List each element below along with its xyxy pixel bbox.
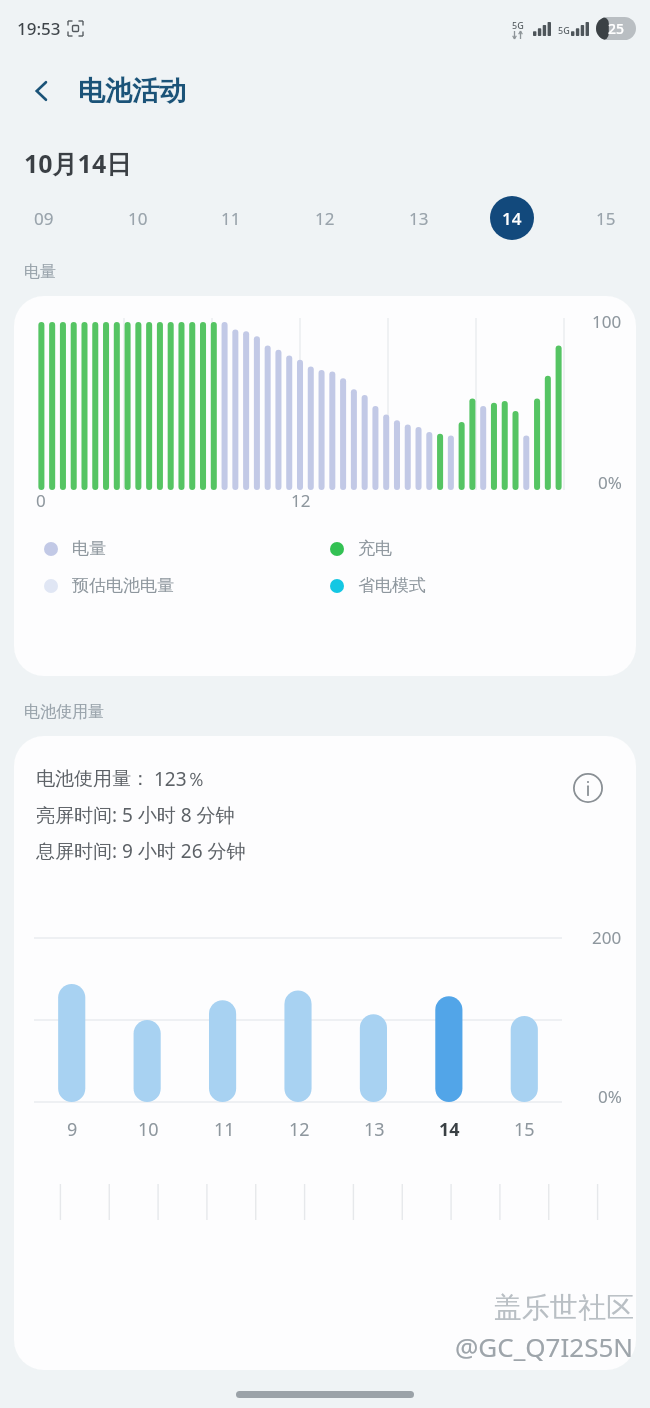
staticText: @GC_Q7I2S5N <box>455 1329 634 1364</box>
button[interactable]: Info <box>566 766 610 810</box>
staticText: 19:53 <box>17 17 61 40</box>
staticText: 10 <box>128 207 148 230</box>
button[interactable]: 充电 <box>330 538 616 559</box>
staticText: 10月14日 <box>24 146 132 180</box>
button[interactable]: 10 <box>116 196 160 240</box>
staticText: 12 <box>291 489 311 512</box>
staticText: 5G <box>512 19 524 31</box>
staticText: 0% <box>598 1085 622 1108</box>
staticText: 15 <box>514 1117 535 1142</box>
staticText: 14 <box>502 207 522 230</box>
staticText: 25 <box>608 19 625 38</box>
button[interactable]: 省电模式 <box>330 575 616 596</box>
staticText: 12 <box>315 207 335 230</box>
staticText: 省电模式 <box>358 575 426 596</box>
staticText: 123％ <box>154 766 206 792</box>
staticText: 电量 <box>72 538 106 559</box>
staticText: 09 <box>34 207 54 230</box>
staticText: 电池使用量 <box>24 702 104 722</box>
staticText: 预估电池电量 <box>72 575 174 596</box>
staticText: 盖乐世社区 <box>494 1290 634 1325</box>
staticText: 充电 <box>358 538 392 559</box>
button[interactable]: 09 <box>22 196 66 240</box>
staticText: 9 <box>67 1117 78 1142</box>
staticText: 14 <box>439 1117 460 1142</box>
staticText: 电量 <box>24 262 56 282</box>
button[interactable]: 电量 <box>44 538 330 559</box>
staticText: 15 <box>596 207 616 230</box>
staticText: 0% <box>598 471 622 494</box>
button[interactable]: 11 <box>209 196 253 240</box>
staticText: 电池活动 <box>78 74 186 108</box>
staticText: 11 <box>214 1117 235 1142</box>
staticText: 12 <box>289 1117 310 1142</box>
staticText: 13 <box>364 1117 385 1142</box>
staticText: 息屏时间: 9 小时 26 分钟 <box>36 838 246 864</box>
staticText: 0 <box>36 489 46 512</box>
button[interactable]: 预估电池电量 <box>44 575 330 596</box>
staticText: 10 <box>138 1117 159 1142</box>
button[interactable]: 12 <box>303 196 347 240</box>
button[interactable]: 13 <box>397 196 441 240</box>
staticText: 电池使用量： <box>36 767 150 791</box>
button[interactable]: 14 <box>490 196 534 240</box>
staticText: 11 <box>221 207 241 230</box>
staticText: 亮屏时间: 5 小时 8 分钟 <box>36 802 235 828</box>
button[interactable]: 15 <box>584 196 628 240</box>
staticText: 100 <box>592 310 622 333</box>
staticText: 200 <box>592 926 622 949</box>
button[interactable]: Back <box>18 67 66 115</box>
staticText: 13 <box>409 207 429 230</box>
staticText: 5G <box>558 24 570 36</box>
